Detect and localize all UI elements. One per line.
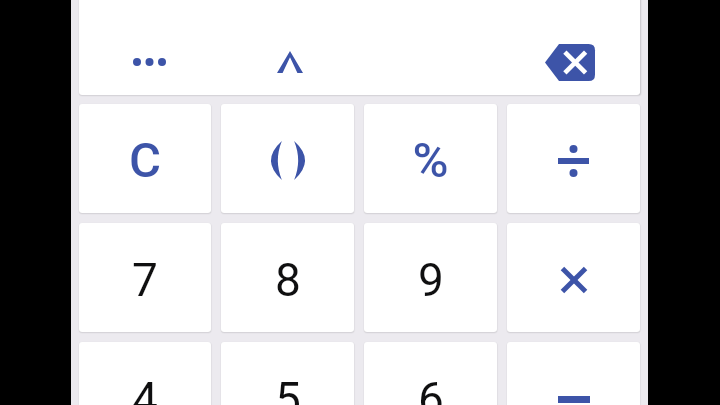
button[interactable]: More options — [79, 29, 220, 95]
button[interactable]: Minus — [507, 342, 640, 405]
button[interactable]: 7 — [79, 223, 211, 332]
button[interactable]: % — [364, 104, 497, 213]
button[interactable]: 6 — [364, 342, 497, 405]
button[interactable]: 4 — [79, 342, 211, 405]
staticText: 5 — [275, 372, 301, 405]
staticText: 6 — [418, 372, 444, 405]
button[interactable]: 9 — [364, 223, 497, 332]
staticText: 9 — [418, 253, 444, 307]
button[interactable]: 8 — [221, 223, 354, 332]
button[interactable]: Multiply — [507, 223, 640, 332]
button[interactable]: C — [79, 104, 211, 213]
staticText: 4 — [132, 372, 158, 405]
button[interactable]: Divide — [507, 104, 640, 213]
staticText: 7 — [132, 253, 158, 307]
staticText: % — [412, 132, 449, 189]
staticText: 8 — [275, 253, 301, 307]
button[interactable]: More options — [79, 0, 640, 95]
button[interactable]: Exponent — [220, 29, 360, 95]
button[interactable]: 5 — [221, 342, 354, 405]
button[interactable]: Backspace — [500, 29, 640, 95]
staticText: C — [129, 132, 161, 189]
button[interactable]: Parentheses — [221, 104, 354, 213]
